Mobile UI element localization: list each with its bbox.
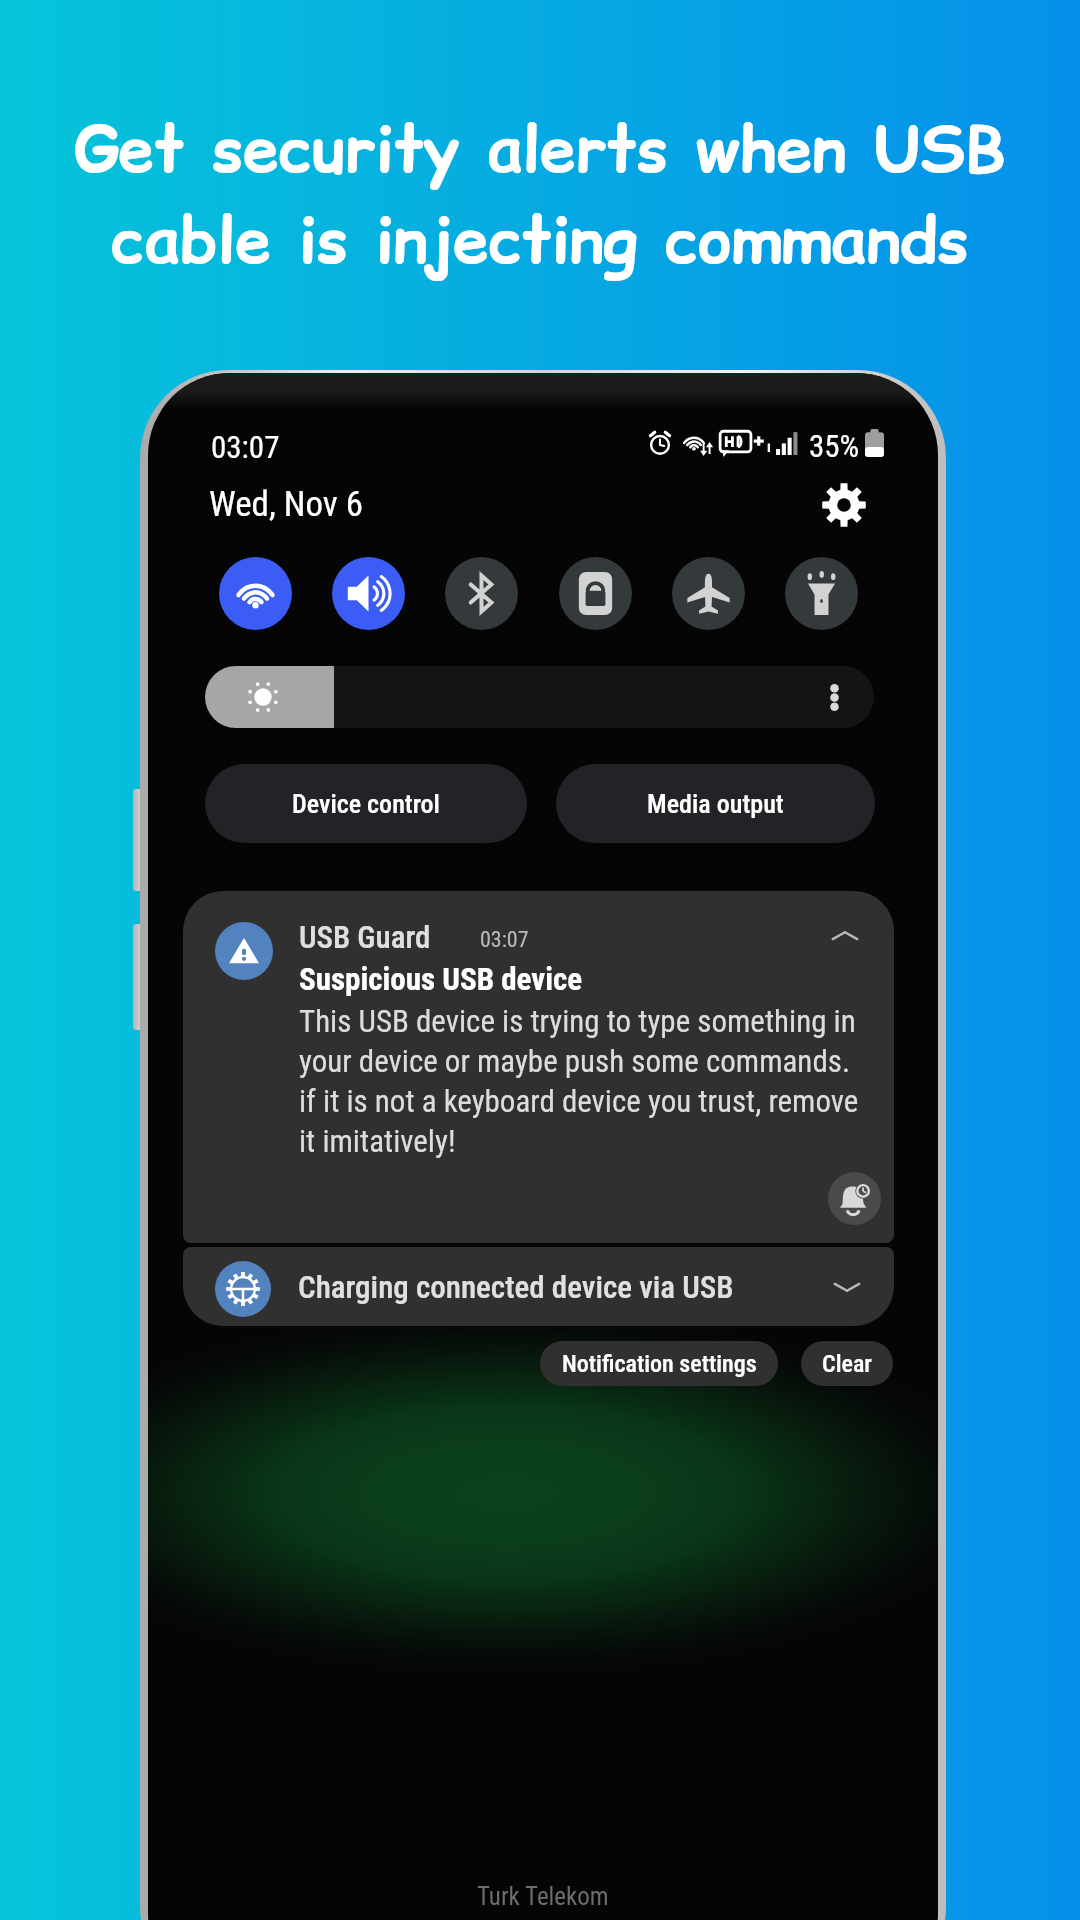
staticText: Notification settings (562, 1350, 757, 1378)
button[interactable]: USB Guard (183, 891, 894, 1243)
button[interactable]: Bluetooth (445, 557, 518, 630)
staticText: Wed, Nov 6 (209, 484, 364, 525)
button[interactable]: Snooze notification (828, 1172, 881, 1225)
staticText: 35% (809, 428, 860, 458)
button[interactable]: Clear (801, 1341, 893, 1386)
button[interactable]: Notification settings (540, 1341, 778, 1386)
button[interactable]: Settings (816, 477, 872, 533)
button[interactable]: Charging connected device via USB (183, 1247, 894, 1326)
button[interactable]: Wi-Fi (219, 557, 292, 630)
staticText: Device control (292, 789, 440, 819)
staticText: Media output (647, 789, 784, 819)
button[interactable]: Media output (556, 764, 875, 843)
button[interactable]: Screen lock (559, 557, 632, 630)
staticText: Suspicious USB device (299, 961, 583, 997)
staticText: Turk Telekom (477, 1882, 609, 1911)
staticText: This USB device is trying to type someth… (299, 1003, 867, 1159)
staticText: Clear (822, 1350, 872, 1378)
button[interactable]: Airplane mode (672, 557, 745, 630)
button[interactable]: Device control (205, 764, 527, 843)
button[interactable]: Flashlight (785, 557, 858, 630)
staticText: Get security alerts when USB cable is in… (0, 104, 1080, 285)
button[interactable]: Sound (332, 557, 405, 630)
staticText: 03:07 (211, 429, 280, 465)
button[interactable] (205, 666, 874, 728)
staticText: Charging connected device via USB (298, 1269, 734, 1305)
staticText: 03:07 (480, 927, 529, 953)
staticText: USB Guard (299, 919, 431, 955)
